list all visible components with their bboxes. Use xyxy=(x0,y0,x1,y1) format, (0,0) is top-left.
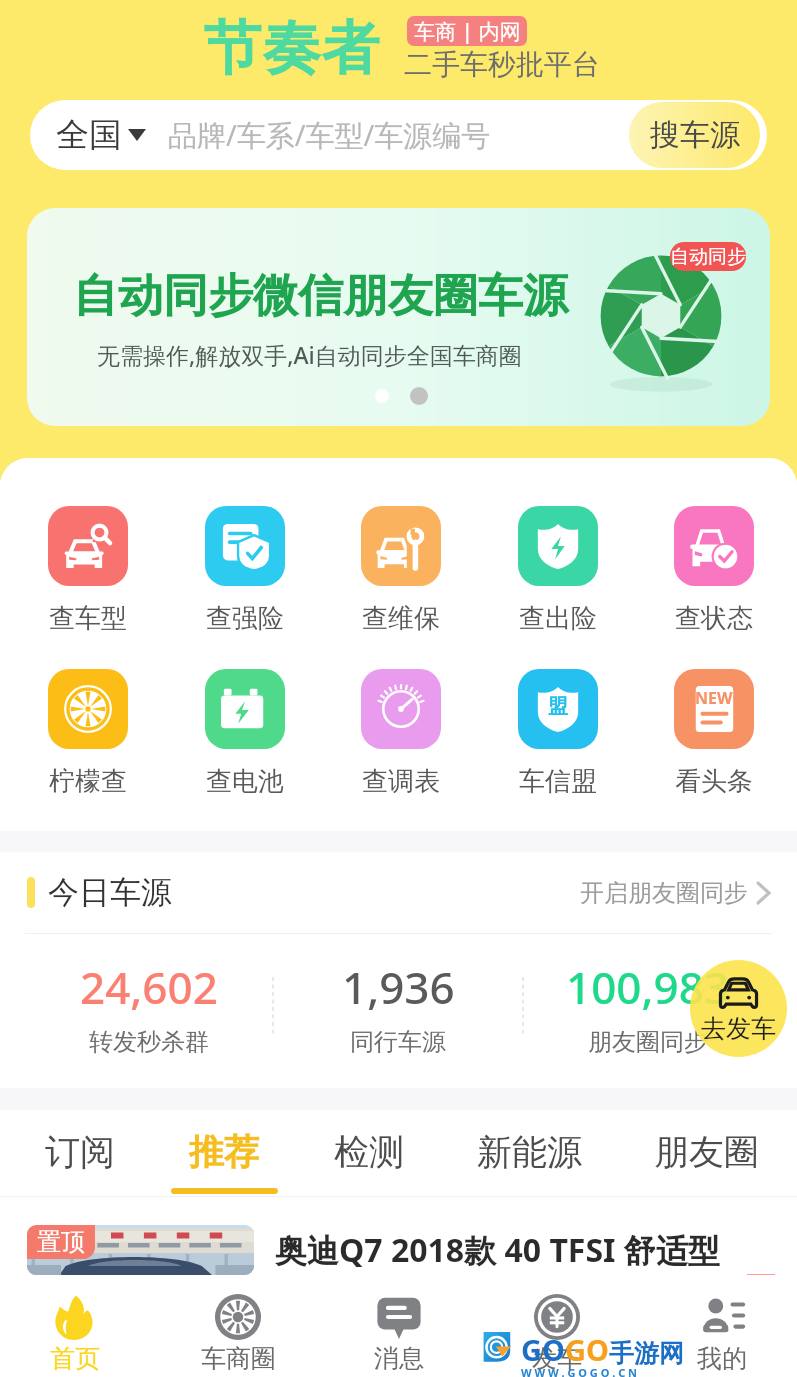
staticText: 首页 xyxy=(50,1343,100,1374)
button[interactable]: 发车 xyxy=(497,1275,617,1377)
button[interactable]: 查强险 xyxy=(175,506,315,635)
staticText: 朋友圈同步 xyxy=(588,1027,708,1057)
button[interactable]: 查调表 xyxy=(331,669,471,798)
button[interactable]: 推荐 xyxy=(162,1110,286,1197)
staticText: 查调表 xyxy=(362,765,440,798)
staticText: 发车 xyxy=(532,1343,582,1374)
button[interactable]: 车商圈 xyxy=(178,1275,298,1377)
staticText: 柠檬查 xyxy=(49,765,127,798)
staticText: 查车型 xyxy=(49,602,127,635)
staticText: 100,983 xyxy=(566,957,730,1017)
button[interactable]: 柠檬查 xyxy=(18,669,158,798)
staticText: 去发车 xyxy=(701,1013,776,1044)
staticText: 查状态 xyxy=(675,602,753,635)
button[interactable]: 我的 xyxy=(662,1275,782,1377)
button[interactable]: 查出险 xyxy=(488,506,628,635)
button[interactable]: NEW xyxy=(644,669,784,798)
button[interactable]: 全国 xyxy=(56,114,146,156)
staticText: 车商圈 xyxy=(201,1343,276,1374)
staticText: 自动同步微信朋友圈车源 xyxy=(73,268,568,325)
button[interactable]: 查维保 xyxy=(331,506,471,635)
staticText: 转发秒杀群 xyxy=(89,1027,209,1057)
button[interactable]: 订阅 xyxy=(18,1110,142,1197)
staticText: 车信盟 xyxy=(519,765,597,798)
staticText: 二手车秒批平台 xyxy=(404,47,600,82)
button[interactable]: 查电池 xyxy=(175,669,315,798)
staticText: 查强险 xyxy=(206,602,284,635)
staticText: 订阅 xyxy=(45,1130,115,1174)
staticText: 无需操作,解放双手,Ai自动同步全国车商圈 xyxy=(97,339,522,370)
staticText: 新能源 xyxy=(477,1130,582,1174)
staticText: 消息 xyxy=(374,1343,424,1374)
staticText: 自动同步 xyxy=(670,245,746,269)
button[interactable]: 盟 xyxy=(488,669,628,798)
staticText: GO xyxy=(565,1330,609,1369)
button[interactable]: 朋友圈 xyxy=(644,1110,768,1197)
staticText: 朋友圈 xyxy=(654,1130,759,1174)
staticText: 查维保 xyxy=(362,602,440,635)
button[interactable]: 查状态 xyxy=(644,506,784,635)
staticText: 盟 xyxy=(548,694,568,719)
staticText: 1,936 xyxy=(342,957,455,1017)
staticText: 全国 xyxy=(56,114,122,156)
staticText: 搜车源 xyxy=(650,116,740,154)
button[interactable]: 搜车源 xyxy=(629,102,760,168)
staticText: NEW xyxy=(695,687,733,709)
button[interactable]: 去发车 xyxy=(690,960,787,1057)
staticText: 车商 | 内网 xyxy=(414,17,521,46)
staticText: 手游网 xyxy=(609,1338,684,1369)
staticText: 同行车源 xyxy=(350,1027,446,1057)
button[interactable]: 检测 xyxy=(307,1110,431,1197)
staticText: 今日车源 xyxy=(48,873,172,912)
staticText: 看头条 xyxy=(675,765,753,798)
staticText: 品牌/车系/车型/车源编号 xyxy=(168,115,491,155)
staticText: GO xyxy=(521,1330,565,1369)
staticText: 开启朋友圈同步 xyxy=(580,878,748,908)
button[interactable]: 首页 xyxy=(15,1275,135,1377)
staticText: 置顶 xyxy=(37,1227,85,1257)
staticText: 节奏者 xyxy=(203,12,380,85)
staticText: 查出险 xyxy=(519,602,597,635)
button[interactable]: 消息 xyxy=(339,1275,459,1377)
staticText: 我的 xyxy=(697,1343,747,1374)
button[interactable]: 查车型 xyxy=(18,506,158,635)
button[interactable]: 新能源 xyxy=(467,1110,591,1197)
button[interactable]: 置顶 xyxy=(27,1225,797,1275)
staticText: 奥迪Q7 2018款 40 TFSI 舒适型 xyxy=(275,1228,720,1272)
staticText: W W W . G O G O . C N xyxy=(521,1365,638,1377)
staticText: 推荐 xyxy=(189,1130,259,1174)
button[interactable]: 开启朋友圈同步 xyxy=(580,878,770,908)
staticText: 24,602 xyxy=(80,957,218,1017)
button[interactable]: 自动同步 xyxy=(27,208,770,426)
staticText: 检测 xyxy=(334,1130,404,1174)
staticText: 查电池 xyxy=(206,765,284,798)
